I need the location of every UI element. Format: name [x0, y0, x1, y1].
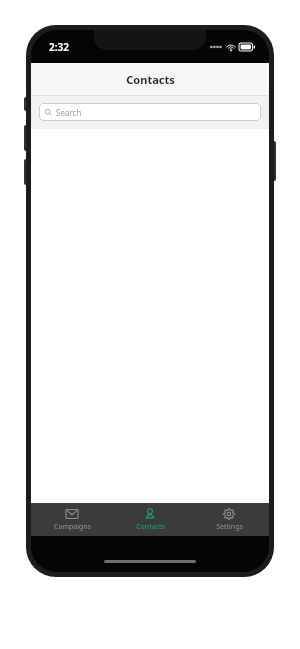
staticText: Settings: [216, 522, 243, 532]
staticText: 2:32: [49, 40, 69, 54]
button[interactable]: Contacts: [112, 503, 188, 536]
button[interactable]: Search: [39, 103, 261, 121]
staticText: Campaigns: [54, 522, 91, 532]
staticText: Contacts: [136, 522, 165, 532]
button[interactable]: Settings: [191, 503, 267, 536]
staticText: Contacts: [126, 72, 175, 87]
button[interactable]: Campaigns: [34, 503, 110, 536]
staticText: Search: [56, 107, 82, 118]
